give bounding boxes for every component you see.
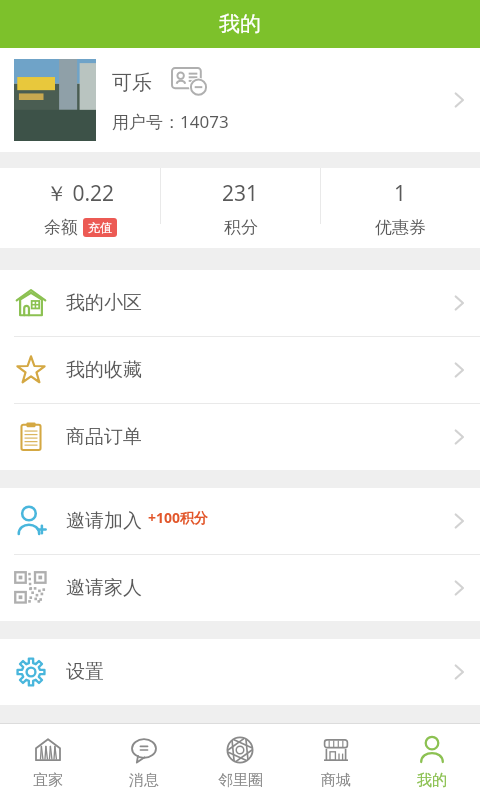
button[interactable]: 宜家	[0, 724, 96, 800]
button[interactable]: 我的小区	[0, 270, 480, 336]
staticText: 邀请家人	[66, 576, 142, 600]
staticText: 宜家	[33, 771, 63, 790]
staticText: 我的	[219, 11, 261, 37]
staticText: 积分	[224, 217, 258, 238]
button[interactable]: 商城	[288, 724, 384, 800]
staticText: 邀请加入	[66, 509, 142, 533]
button[interactable]: 邻里圈	[192, 724, 288, 800]
button[interactable]: 1	[321, 168, 480, 248]
staticText: 231	[222, 179, 259, 208]
staticText: 我的小区	[66, 291, 142, 315]
staticText: 用户号：14073	[112, 110, 229, 133]
button[interactable]: 我的收藏	[0, 337, 480, 403]
staticText: +100积分	[148, 508, 209, 527]
button[interactable]: ￥ 0.22	[0, 168, 160, 248]
button[interactable]: 邀请加入	[0, 488, 480, 554]
staticText: 优惠券	[375, 217, 426, 238]
staticText: 1	[394, 179, 407, 208]
button[interactable]: 消息	[96, 724, 192, 800]
button[interactable]: 邀请家人	[0, 555, 480, 621]
staticText: 设置	[66, 660, 104, 684]
button[interactable]: 我的	[384, 724, 480, 800]
staticText: 消息	[129, 771, 159, 790]
staticText: 邻里圈	[218, 771, 263, 790]
staticText: 余额	[44, 217, 78, 238]
button[interactable]: 商品订单	[0, 404, 480, 470]
staticText: 充值	[88, 220, 112, 235]
button[interactable]: 231	[161, 168, 320, 248]
staticText: 商品订单	[66, 425, 142, 449]
button[interactable]: 设置	[0, 639, 480, 705]
staticText: 商城	[321, 771, 351, 790]
staticText: 可乐	[112, 70, 152, 95]
staticText: 我的	[417, 771, 447, 790]
button[interactable]: 可乐	[0, 48, 480, 152]
staticText: ￥ 0.22	[46, 179, 115, 208]
staticText: 我的收藏	[66, 358, 142, 382]
